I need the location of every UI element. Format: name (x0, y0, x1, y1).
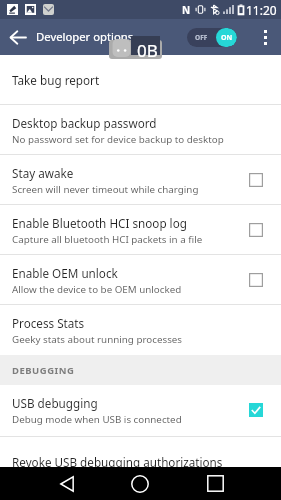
staticText: Desktop backup password (12, 115, 157, 131)
staticText: 0B (137, 39, 158, 62)
staticText: USB debugging (12, 395, 98, 411)
staticText: No password set for device backup to des… (12, 133, 224, 146)
button[interactable]: Take bug report (0, 55, 281, 105)
button[interactable]: Enable Bluetooth HCI snoop log (0, 205, 281, 255)
button[interactable]: More options (252, 19, 279, 55)
staticText: DEBUGGING (12, 364, 75, 377)
button[interactable]: Revoke USB debugging authorizations (0, 435, 281, 467)
button[interactable]: Home (117, 467, 163, 500)
button[interactable]: Recent apps (192, 467, 238, 500)
staticText: Enable Bluetooth HCI snoop log (12, 215, 187, 231)
button[interactable]: Data usage (109, 40, 162, 59)
staticText: N (182, 3, 191, 17)
button[interactable]: Back (44, 467, 90, 500)
button[interactable]: Enable OEM unlock (0, 255, 281, 305)
staticText: Geeky stats about running processes (12, 333, 183, 346)
staticText: Revoke USB debugging authorizations (12, 454, 223, 467)
staticText: Process Stats (12, 315, 85, 331)
staticText: Developer options (36, 29, 134, 44)
staticText: OFF (195, 33, 208, 42)
staticText: ON (221, 33, 233, 43)
button[interactable]: OFF (187, 28, 237, 47)
staticText: Allow the device to be OEM unlocked (12, 283, 182, 296)
staticText: Stay awake (12, 165, 74, 181)
button[interactable]: Navigate up (0, 19, 36, 55)
button[interactable]: Stay awake (0, 155, 281, 205)
staticText: Capture all bluetooth HCI packets in a f… (12, 233, 203, 246)
button[interactable]: Process Stats (0, 305, 281, 355)
staticText: Take bug report (12, 72, 100, 88)
staticText: Enable OEM unlock (12, 265, 118, 281)
staticText: Screen will never timeout while charging (12, 183, 199, 196)
staticText: Debug mode when USB is connected (12, 413, 182, 426)
button[interactable]: Desktop backup password (0, 105, 281, 155)
button[interactable]: USB debugging (0, 385, 281, 435)
staticText: 11:20 (246, 2, 277, 18)
